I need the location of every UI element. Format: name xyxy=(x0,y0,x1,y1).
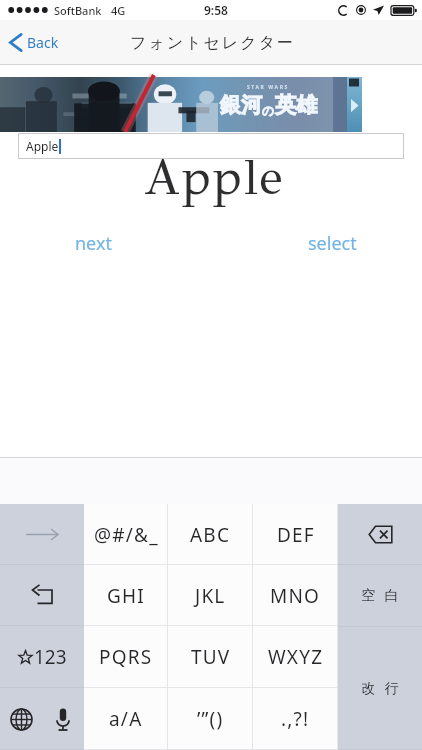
staticText: ’”() xyxy=(197,706,224,732)
staticText: 123 xyxy=(34,644,67,670)
button[interactable]: ’”() xyxy=(168,688,253,750)
button[interactable]: Advertisement xyxy=(0,77,362,132)
button[interactable]: Symbols and numbers xyxy=(0,626,84,688)
button[interactable]: Next candidate xyxy=(0,504,84,565)
button[interactable]: Apple xyxy=(18,133,404,159)
staticText: @#/&_ xyxy=(94,522,159,548)
button[interactable]: DEF xyxy=(253,504,338,565)
staticText: DEF xyxy=(277,522,315,548)
staticText: MNO xyxy=(270,583,321,609)
staticText: 改行 xyxy=(357,680,403,698)
staticText: PQRS xyxy=(99,644,153,670)
button[interactable]: a/A xyxy=(84,688,168,750)
button[interactable]: MNO xyxy=(253,565,338,626)
button[interactable]: TUV xyxy=(168,626,253,688)
button[interactable]: 空白 xyxy=(338,565,422,627)
staticText: STAR WARS xyxy=(247,84,289,91)
staticText: 9:58 xyxy=(204,2,228,18)
staticText: 銀河 xyxy=(220,92,262,118)
button[interactable]: next xyxy=(67,226,120,261)
staticText: TUV xyxy=(191,644,231,670)
staticText: Back xyxy=(27,33,59,52)
button[interactable]: PQRS xyxy=(84,626,168,688)
staticText: GHI xyxy=(107,583,145,609)
button[interactable]: Switch keyboard xyxy=(0,688,42,750)
staticText: JKL xyxy=(195,583,226,609)
staticText: SoftBank xyxy=(54,3,102,18)
staticText: Apple xyxy=(26,138,59,154)
staticText: WXYZ xyxy=(268,644,324,670)
button[interactable]: Undo xyxy=(0,565,84,626)
staticText: 空白 xyxy=(357,587,403,605)
button[interactable]: JKL xyxy=(168,565,253,626)
staticText: の xyxy=(262,103,275,118)
staticText: ABC xyxy=(190,522,231,548)
button[interactable]: Backspace xyxy=(338,504,422,565)
button[interactable]: .,?! xyxy=(253,688,338,750)
staticText: 英雄 xyxy=(275,92,317,118)
button[interactable]: ABC xyxy=(168,504,253,565)
button[interactable]: Back xyxy=(9,20,59,65)
staticText: next xyxy=(75,231,112,256)
staticText: 4G xyxy=(111,3,126,18)
button[interactable]: @#/&_ xyxy=(84,504,168,565)
button[interactable]: Dictation xyxy=(42,688,84,750)
button[interactable]: 改行 xyxy=(338,627,422,750)
staticText: フォントセレクター xyxy=(129,33,294,53)
button[interactable]: select xyxy=(300,226,365,261)
staticText: select xyxy=(308,231,357,256)
staticText: a/A xyxy=(109,706,143,732)
staticText: .,?! xyxy=(281,706,310,732)
button[interactable]: WXYZ xyxy=(253,626,338,688)
button[interactable]: GHI xyxy=(84,565,168,626)
staticText: Apple xyxy=(143,148,285,208)
